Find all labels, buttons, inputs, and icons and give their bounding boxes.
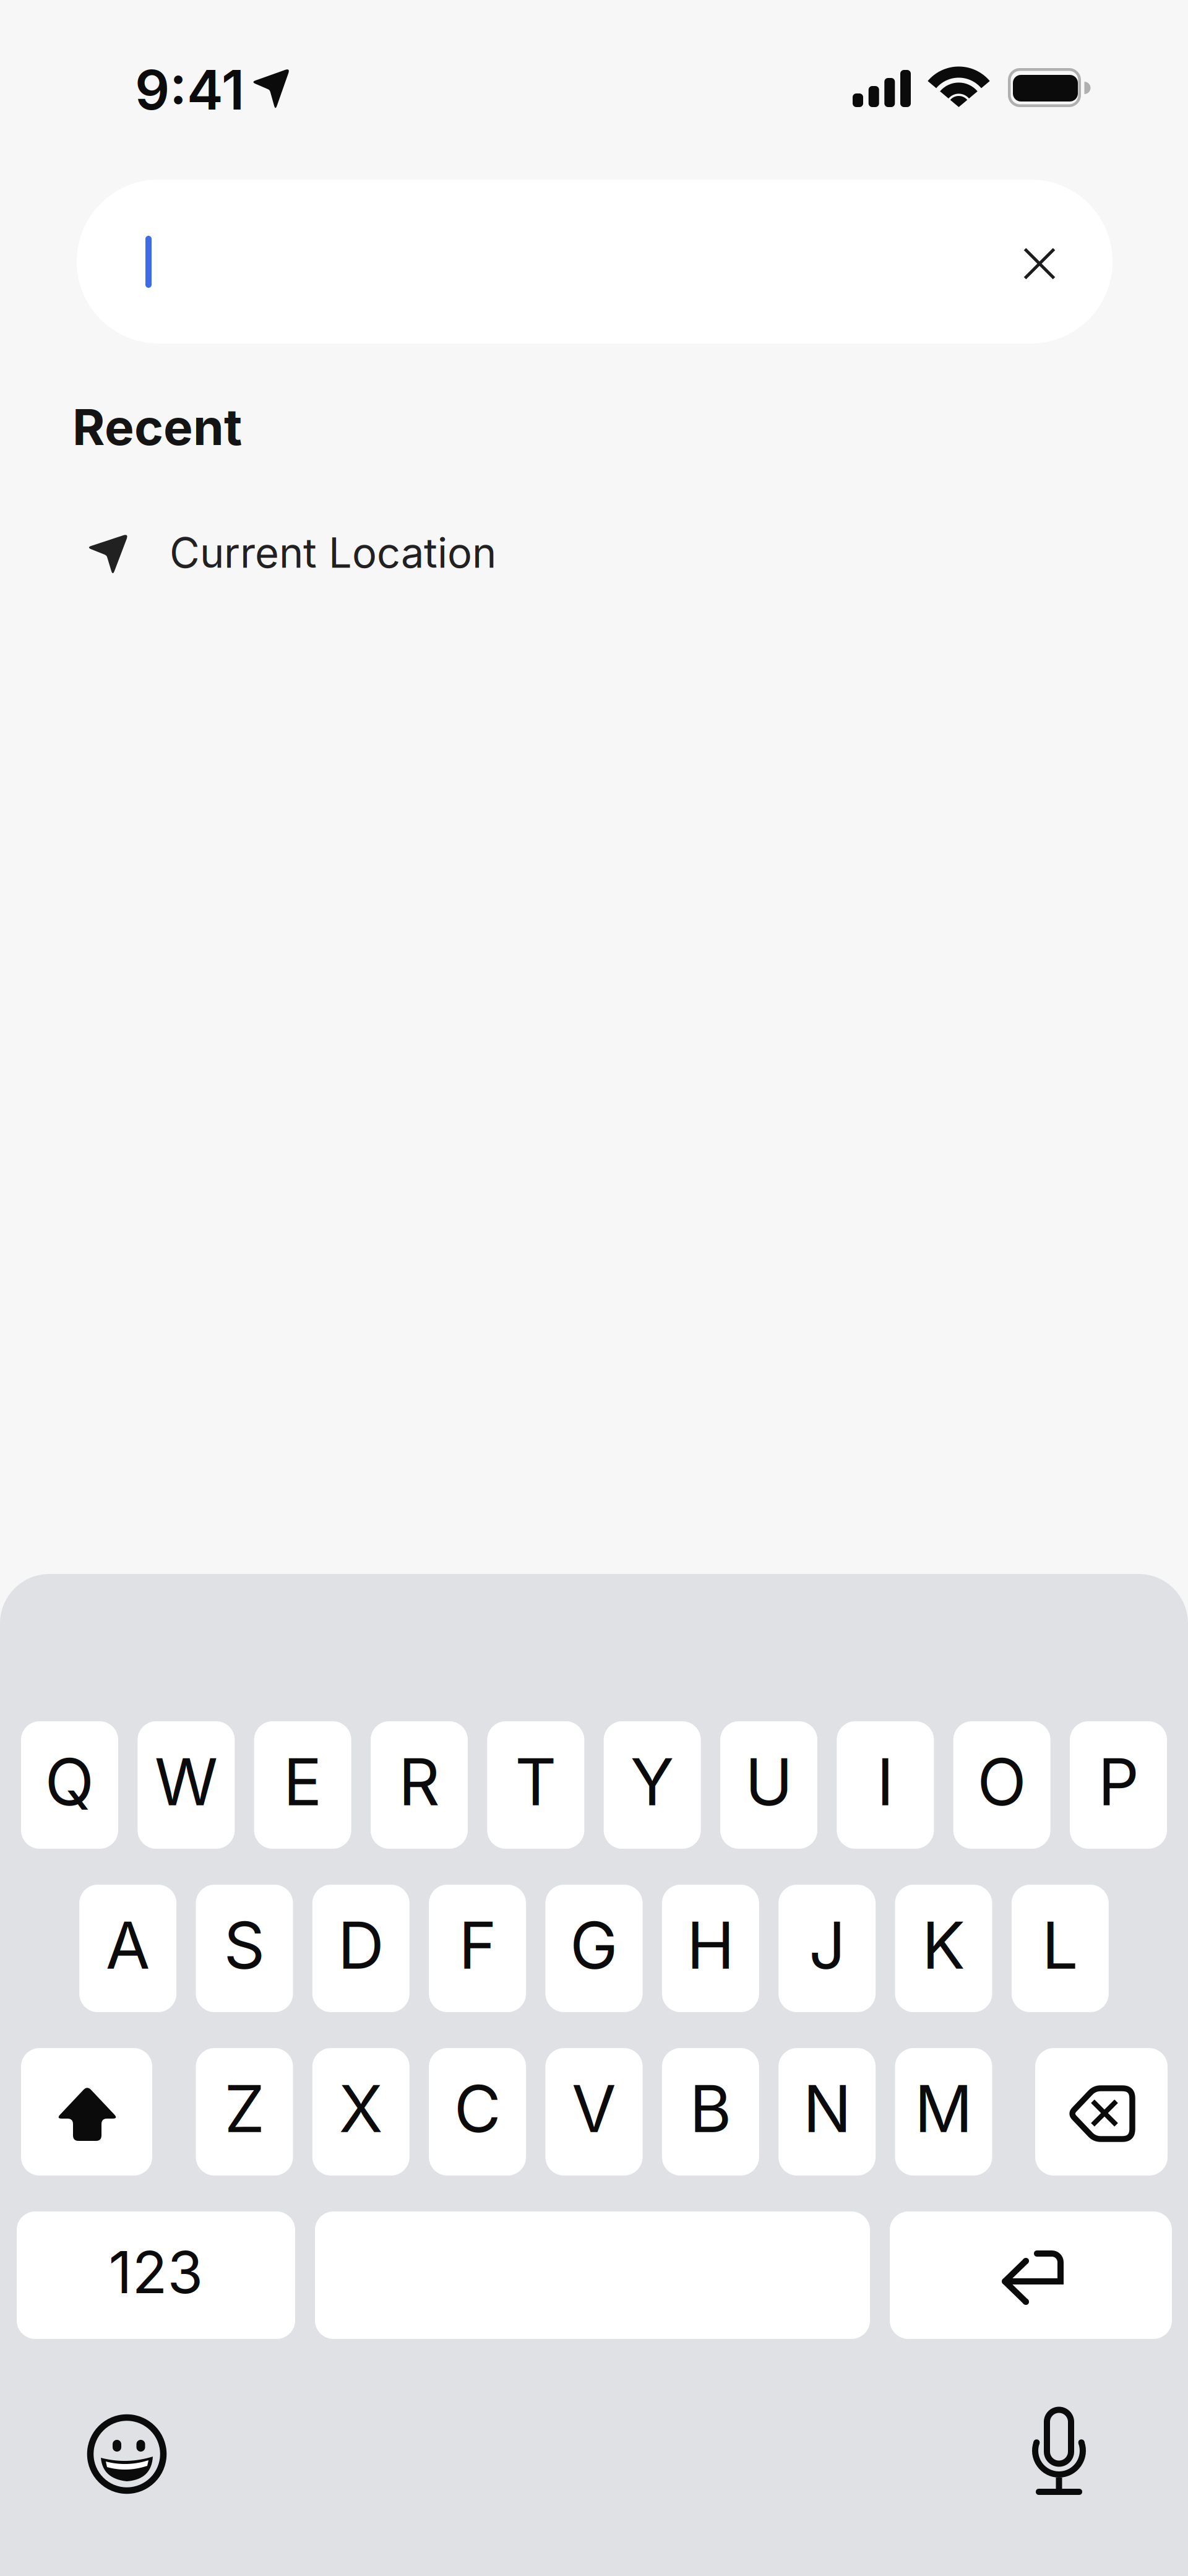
button[interactable]: Z bbox=[196, 2048, 293, 2176]
staticText: N bbox=[803, 2071, 851, 2147]
button[interactable]: H bbox=[662, 1885, 759, 2012]
button[interactable]: J bbox=[779, 1885, 876, 2012]
staticText: Z bbox=[224, 2071, 265, 2147]
button[interactable]: O bbox=[953, 1721, 1050, 1849]
staticText: V bbox=[572, 2071, 616, 2147]
staticText: T bbox=[515, 1744, 556, 1820]
staticText: J bbox=[809, 1907, 845, 1983]
button[interactable]: Clear text bbox=[1002, 227, 1077, 301]
staticText: Q bbox=[45, 1744, 94, 1820]
button[interactable]: Shift bbox=[21, 2048, 152, 2176]
staticText: G bbox=[570, 1907, 618, 1983]
button[interactable]: N bbox=[779, 2048, 876, 2176]
button[interactable]: G bbox=[545, 1885, 643, 2012]
button[interactable]: Current Location bbox=[75, 520, 756, 592]
staticText: X bbox=[339, 2071, 383, 2147]
button[interactable]: P bbox=[1070, 1721, 1167, 1849]
button[interactable]: Q bbox=[21, 1721, 118, 1849]
button[interactable]: L bbox=[1012, 1885, 1109, 2012]
button[interactable]: Delete bbox=[1035, 2048, 1168, 2176]
button[interactable]: Emoji bbox=[77, 2405, 176, 2504]
button[interactable]: M bbox=[895, 2048, 992, 2176]
staticText: M bbox=[915, 2071, 973, 2147]
button[interactable]: C bbox=[429, 2048, 526, 2176]
staticText: A bbox=[106, 1907, 150, 1983]
staticText: 9:41 bbox=[135, 58, 244, 122]
button[interactable]: Return bbox=[890, 2211, 1172, 2339]
button[interactable]: 123 bbox=[17, 2211, 295, 2339]
button[interactable]: S bbox=[196, 1885, 293, 2012]
button[interactable]: R bbox=[371, 1721, 468, 1849]
button[interactable]: A bbox=[79, 1885, 176, 2012]
button[interactable]: U bbox=[720, 1721, 817, 1849]
staticText: H bbox=[687, 1907, 734, 1983]
staticText: K bbox=[922, 1907, 965, 1983]
staticText: S bbox=[224, 1907, 265, 1983]
staticText: Recent bbox=[72, 398, 242, 456]
button[interactable]: W bbox=[138, 1721, 235, 1849]
button[interactable]: B bbox=[662, 2048, 759, 2176]
button[interactable]: Y bbox=[604, 1721, 701, 1849]
staticText: D bbox=[338, 1907, 384, 1983]
staticText: Y bbox=[630, 1744, 674, 1820]
button[interactable]: Dictate bbox=[1009, 2402, 1108, 2501]
button[interactable]: D bbox=[312, 1885, 409, 2012]
staticText: Current Location bbox=[170, 528, 496, 577]
staticText: C bbox=[454, 2071, 501, 2147]
button[interactable]: F bbox=[429, 1885, 526, 2012]
staticText: R bbox=[398, 1744, 440, 1820]
button[interactable]: V bbox=[545, 2048, 643, 2176]
staticText: I bbox=[877, 1744, 894, 1820]
button[interactable]: I bbox=[837, 1721, 934, 1849]
button[interactable]: E bbox=[254, 1721, 351, 1849]
staticText: O bbox=[977, 1744, 1027, 1820]
staticText: E bbox=[283, 1744, 322, 1820]
button[interactable]: X bbox=[312, 2048, 409, 2176]
button[interactable]: T bbox=[487, 1721, 584, 1849]
staticText: P bbox=[1098, 1744, 1139, 1820]
button[interactable]: K bbox=[895, 1885, 992, 2012]
staticText: F bbox=[459, 1907, 496, 1983]
staticText: L bbox=[1042, 1907, 1078, 1983]
staticText: U bbox=[745, 1744, 793, 1820]
staticText: W bbox=[155, 1744, 218, 1820]
staticText: 123 bbox=[109, 2238, 203, 2306]
staticText: B bbox=[689, 2071, 732, 2147]
button[interactable]: Search bbox=[77, 179, 1113, 344]
